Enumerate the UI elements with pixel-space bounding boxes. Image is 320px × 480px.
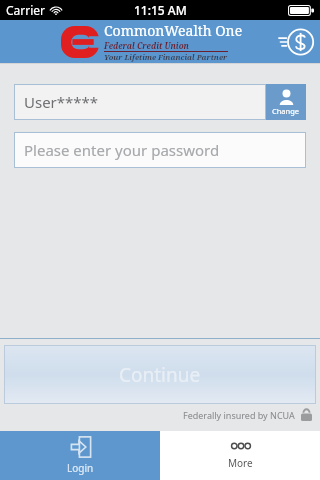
staticText: Continue xyxy=(119,362,201,388)
button[interactable]: Please enter your password xyxy=(14,132,306,168)
button[interactable]: More xyxy=(160,431,320,480)
button[interactable]: User***** xyxy=(14,84,266,120)
button[interactable]: Quick balance xyxy=(274,27,312,57)
staticText: Carrier xyxy=(6,2,46,18)
staticText: Your Lifetime Financial Partner xyxy=(104,52,228,62)
staticText: User***** xyxy=(24,92,99,112)
button[interactable]: Change xyxy=(266,84,306,120)
staticText: Please enter your password xyxy=(24,140,220,160)
staticText: Federal Credit Union xyxy=(104,40,189,51)
staticText: 11:15 AM xyxy=(134,2,187,18)
staticText: Login xyxy=(67,461,94,475)
staticText: Federally insured by NCUA xyxy=(183,409,295,421)
staticText: CommonWealth One xyxy=(104,21,243,40)
button[interactable]: Continue xyxy=(4,345,316,404)
staticText: More xyxy=(228,456,253,470)
button[interactable]: Login xyxy=(0,431,160,480)
staticText: Change xyxy=(272,106,300,116)
